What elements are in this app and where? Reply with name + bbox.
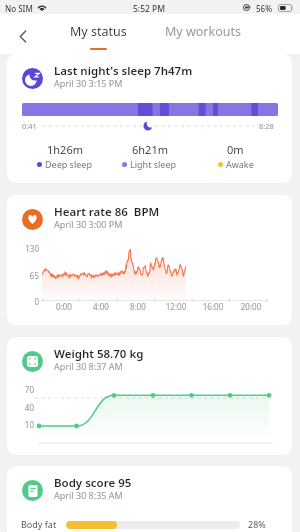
button[interactable]: Heart rate 86 BPM bbox=[7, 195, 292, 325]
staticText: 65 bbox=[17, 270, 39, 281]
staticText: 40 bbox=[18, 402, 34, 413]
staticText: 20:00 bbox=[239, 301, 263, 312]
staticText: Weight 58.70 kg bbox=[54, 346, 144, 362]
staticText: 1h26m bbox=[47, 142, 83, 157]
button[interactable]: My workouts bbox=[163, 14, 243, 50]
staticText: 130 bbox=[17, 243, 39, 254]
staticText: 4:00 bbox=[89, 301, 113, 312]
staticText: 56% bbox=[256, 3, 272, 14]
staticText: April 30 3:00 PM bbox=[54, 218, 123, 230]
staticText: Light sleep bbox=[130, 158, 177, 170]
staticText: 0:00 bbox=[52, 301, 76, 312]
staticText: Awake bbox=[226, 158, 254, 170]
button[interactable]: My status bbox=[62, 14, 134, 50]
staticText: Heart rate 86 BPM bbox=[54, 204, 160, 220]
staticText: April 30 8:37 AM bbox=[54, 360, 123, 372]
staticText: April 30 8:35 AM bbox=[54, 489, 123, 501]
staticText: April 30 3:15 PM bbox=[54, 77, 123, 89]
staticText: Body fat bbox=[21, 518, 57, 530]
staticText: 5:52 PM bbox=[133, 3, 166, 15]
button[interactable]: Weight 58.70 kg bbox=[7, 337, 292, 455]
staticText: My workouts bbox=[165, 23, 241, 40]
button[interactable]: Body score 95 bbox=[7, 466, 292, 532]
staticText: 10 bbox=[18, 419, 34, 430]
staticText: 6h21m bbox=[132, 142, 168, 157]
staticText: 70 bbox=[18, 384, 34, 395]
staticText: 28% bbox=[248, 518, 266, 530]
staticText: No SIM bbox=[5, 3, 33, 14]
staticText: Body score 95 bbox=[54, 475, 132, 491]
staticText: 16:00 bbox=[201, 301, 225, 312]
staticText: 12:00 bbox=[164, 301, 188, 312]
staticText: My status bbox=[70, 23, 127, 40]
staticText: Last night's sleep 7h47m bbox=[54, 63, 193, 79]
staticText: 0 bbox=[17, 296, 39, 307]
button[interactable]: Back bbox=[8, 22, 37, 51]
button[interactable]: Last night's sleep 7h47m bbox=[7, 54, 292, 183]
staticText: 0m bbox=[227, 142, 244, 157]
staticText: 0:41 bbox=[22, 121, 37, 131]
staticText: 8:28 bbox=[259, 121, 274, 131]
staticText: 8:00 bbox=[126, 301, 150, 312]
staticText: Deep sleep bbox=[45, 158, 92, 170]
